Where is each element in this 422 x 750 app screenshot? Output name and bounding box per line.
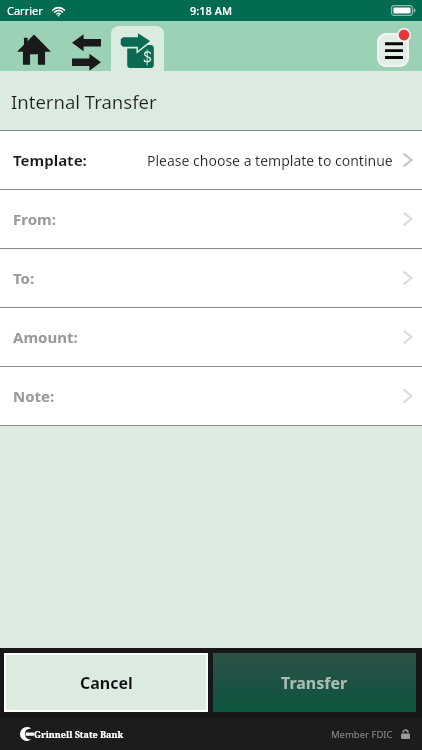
staticText: Please choose a template to continue (147, 151, 393, 170)
staticText: Transfer (281, 672, 348, 694)
staticText: Grinnell State Bank (34, 728, 124, 740)
staticText: To: (13, 268, 35, 288)
staticText: Template: (13, 150, 87, 170)
staticText: Note: (13, 386, 55, 406)
staticText: Cancel (80, 672, 133, 694)
button[interactable]: Cancel (6, 655, 206, 710)
button[interactable]: Note: (0, 367, 422, 425)
button[interactable]: Menu (373, 27, 411, 65)
staticText: Member FDIC (331, 728, 393, 741)
button[interactable]: To: (0, 249, 422, 307)
button[interactable]: Amount: (0, 308, 422, 366)
staticText: 9:18 AM (190, 3, 233, 18)
button[interactable]: Internal Transfer (111, 26, 164, 71)
button[interactable]: From: (0, 190, 422, 248)
staticText: Amount: (13, 327, 78, 347)
staticText: Carrier (7, 3, 43, 18)
button[interactable]: Transfers (64, 21, 108, 71)
staticText: Internal Transfer (11, 89, 157, 114)
staticText: From: (13, 209, 56, 229)
button[interactable]: Transfer (213, 653, 416, 712)
button[interactable]: Home (13, 21, 54, 71)
button[interactable]: Template: (0, 131, 422, 189)
